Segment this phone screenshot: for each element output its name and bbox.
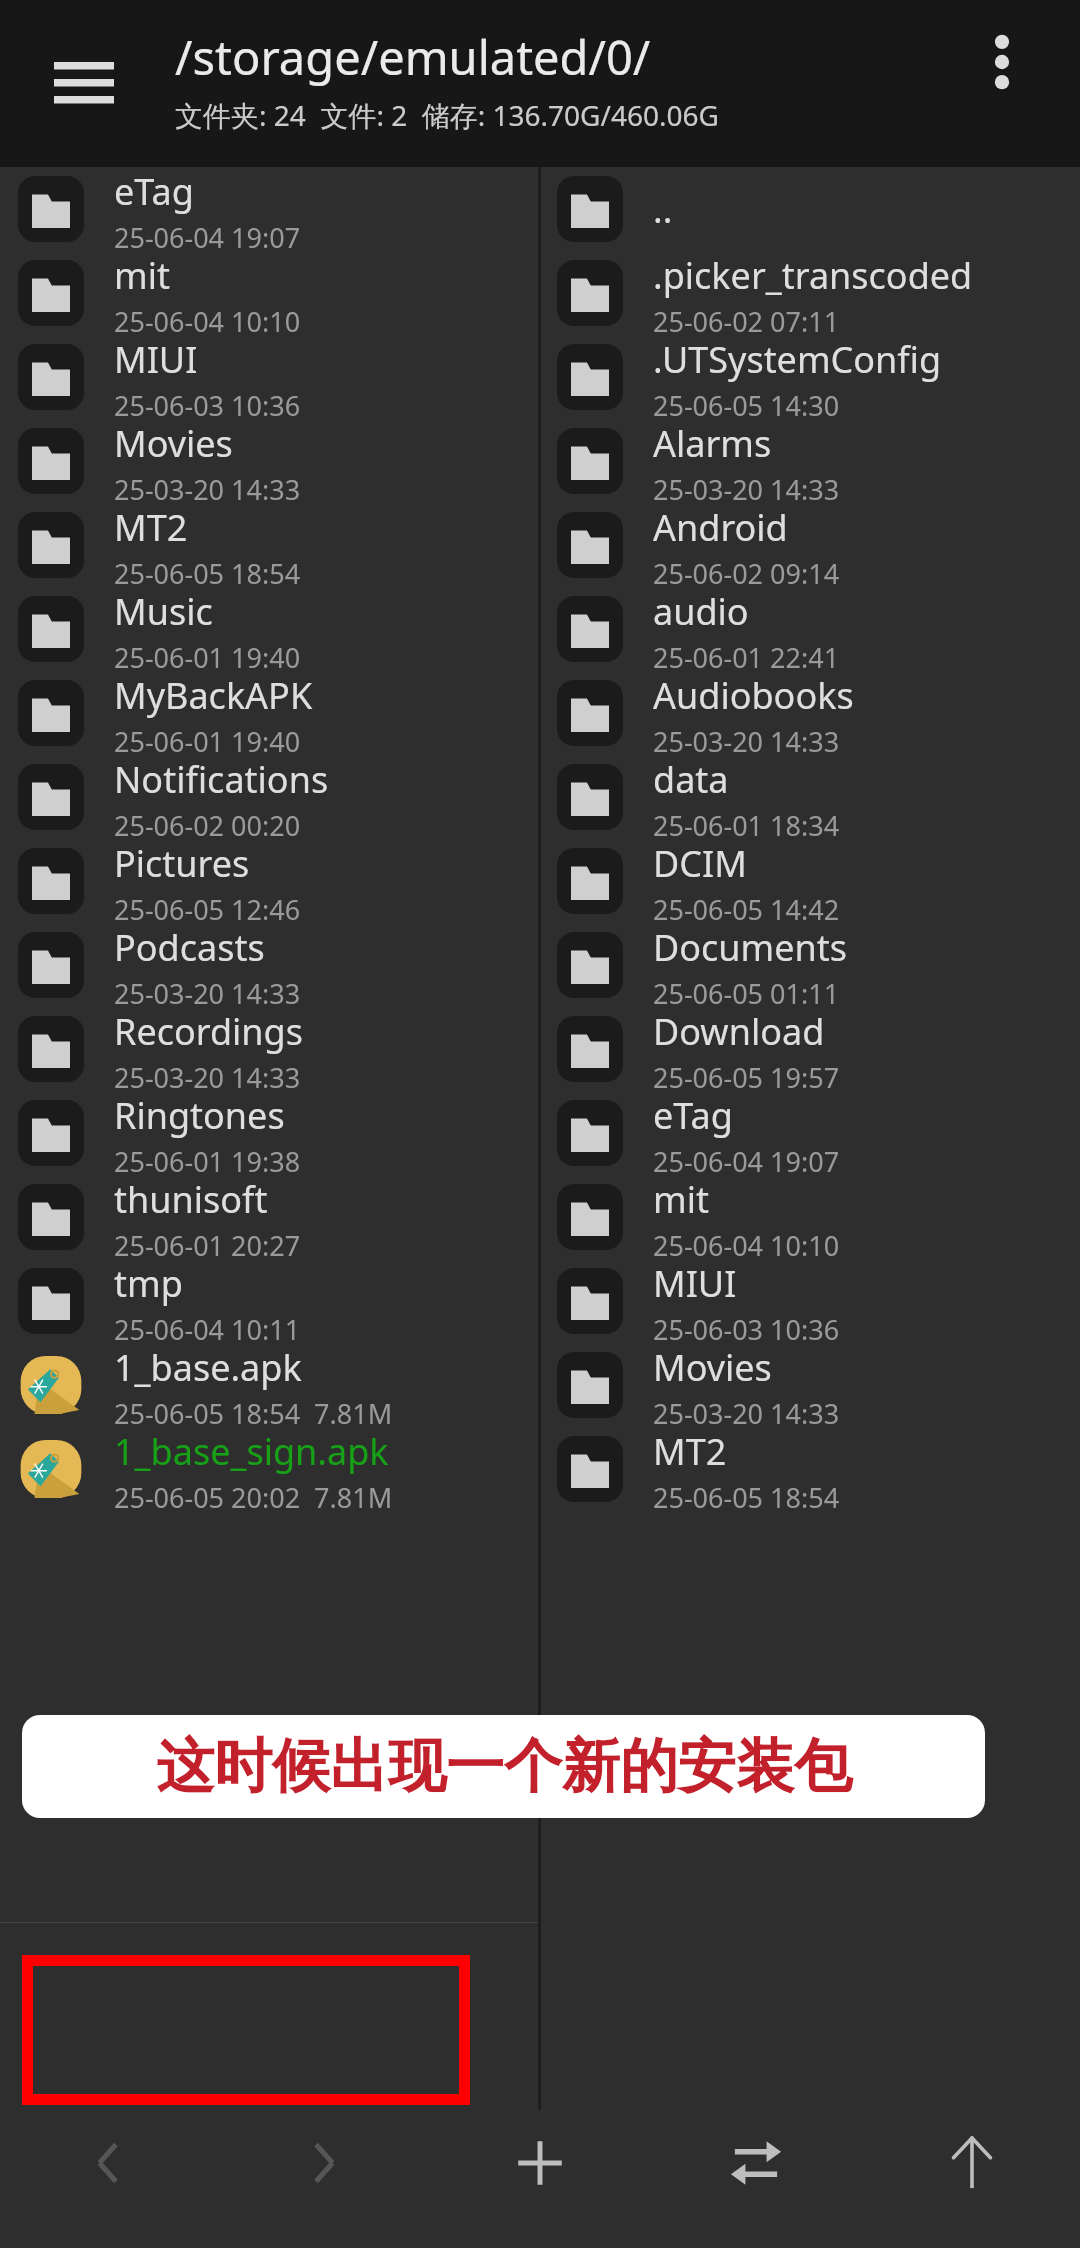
staticText: Music bbox=[114, 587, 213, 636]
button[interactable]: Notifications bbox=[0, 755, 538, 839]
staticText: Audiobooks bbox=[653, 671, 854, 720]
button[interactable]: MT2 bbox=[541, 1427, 1080, 1511]
staticText: Recordings bbox=[114, 1007, 303, 1056]
staticText: eTag bbox=[653, 1091, 733, 1140]
staticText: 25-03-20 14:33 bbox=[653, 723, 840, 755]
staticText: /storage/emulated/0/ bbox=[175, 25, 651, 89]
staticText: MT2 bbox=[114, 503, 188, 552]
button[interactable]: Up bbox=[864, 2110, 1080, 2248]
button[interactable]: .. bbox=[541, 167, 1080, 251]
staticText: 25-06-02 07:11 bbox=[653, 303, 840, 335]
button[interactable]: Documents bbox=[541, 923, 1080, 1007]
button[interactable]: Audiobooks bbox=[541, 671, 1080, 755]
staticText: 25-06-04 19:07 bbox=[114, 219, 301, 251]
staticText: 文件夹: 24 文件: 2 储存: 136.70G/460.06G bbox=[175, 96, 719, 134]
button[interactable]: Forward bbox=[216, 2110, 432, 2248]
staticText: 25-06-05 18:54 bbox=[653, 1479, 840, 1511]
staticText: 25-06-05 19:57 bbox=[653, 1059, 840, 1091]
button[interactable]: DCIM bbox=[541, 839, 1080, 923]
button[interactable]: Ringtones bbox=[0, 1091, 538, 1175]
button[interactable]: eTag bbox=[541, 1091, 1080, 1175]
button[interactable]: 1_base_sign.apk bbox=[0, 1427, 538, 1511]
staticText: 1_base_sign.apk bbox=[114, 1427, 389, 1476]
staticText: 25-06-03 10:36 bbox=[114, 387, 301, 419]
button[interactable]: Menu bbox=[24, 32, 124, 132]
staticText: 25-06-01 19:38 bbox=[114, 1143, 301, 1175]
staticText: thunisoft bbox=[114, 1175, 268, 1224]
button[interactable]: .UTSystemConfig bbox=[541, 335, 1080, 419]
button[interactable]: 1_base.apk bbox=[0, 1343, 538, 1427]
staticText: Ringtones bbox=[114, 1091, 285, 1140]
staticText: Alarms bbox=[653, 419, 772, 468]
staticText: 25-06-04 10:10 bbox=[114, 303, 301, 335]
staticText: MIUI bbox=[114, 335, 198, 384]
staticText: audio bbox=[653, 587, 749, 636]
button[interactable]: MyBackAPK bbox=[0, 671, 538, 755]
staticText: 25-06-05 01:11 bbox=[653, 975, 840, 1007]
button[interactable]: Recordings bbox=[0, 1007, 538, 1091]
button[interactable]: .picker_transcoded bbox=[541, 251, 1080, 335]
button[interactable]: MT2 bbox=[0, 503, 538, 587]
button[interactable]: tmp bbox=[0, 1259, 538, 1343]
staticText: 25-03-20 14:33 bbox=[653, 471, 840, 503]
staticText: Podcasts bbox=[114, 923, 265, 972]
staticText: MT2 bbox=[653, 1427, 727, 1476]
button[interactable]: Podcasts bbox=[0, 923, 538, 1007]
staticText: .picker_transcoded bbox=[653, 251, 973, 300]
staticText: 25-06-05 18:54 7.81M bbox=[114, 1395, 393, 1427]
staticText: eTag bbox=[114, 167, 194, 216]
button[interactable]: More options bbox=[960, 20, 1044, 104]
staticText: mit bbox=[114, 251, 170, 300]
staticText: 25-06-04 10:11 bbox=[114, 1311, 301, 1343]
staticText: 25-06-02 00:20 bbox=[114, 807, 301, 839]
button[interactable]: data bbox=[541, 755, 1080, 839]
button[interactable]: MIUI bbox=[541, 1259, 1080, 1343]
button[interactable]: Transfer bbox=[648, 2110, 864, 2248]
staticText: mit bbox=[653, 1175, 709, 1224]
button[interactable]: Alarms bbox=[541, 419, 1080, 503]
staticText: 25-06-01 18:34 bbox=[653, 807, 840, 839]
staticText: 25-06-05 14:30 bbox=[653, 387, 840, 419]
staticText: .UTSystemConfig bbox=[653, 335, 942, 384]
staticText: MyBackAPK bbox=[114, 671, 313, 720]
button[interactable]: audio bbox=[541, 587, 1080, 671]
button[interactable]: Music bbox=[0, 587, 538, 671]
button[interactable]: Movies bbox=[0, 419, 538, 503]
button[interactable]: Movies bbox=[541, 1343, 1080, 1427]
staticText: 25-06-01 19:40 bbox=[114, 639, 301, 671]
staticText: 25-06-03 10:36 bbox=[653, 1311, 840, 1343]
staticText: Movies bbox=[653, 1343, 772, 1392]
staticText: 25-06-05 14:42 bbox=[653, 891, 840, 923]
staticText: Movies bbox=[114, 419, 233, 468]
button[interactable]: Back bbox=[0, 2110, 216, 2248]
staticText: DCIM bbox=[653, 839, 747, 888]
staticText: 25-06-01 20:27 bbox=[114, 1227, 301, 1259]
staticText: Notifications bbox=[114, 755, 329, 804]
staticText: .. bbox=[653, 185, 673, 234]
staticText: 25-03-20 14:33 bbox=[653, 1395, 840, 1427]
staticText: 25-06-02 09:14 bbox=[653, 555, 840, 587]
staticText: 25-03-20 14:33 bbox=[114, 471, 301, 503]
button[interactable]: Download bbox=[541, 1007, 1080, 1091]
button[interactable]: eTag bbox=[0, 167, 538, 251]
staticText: 25-06-04 10:10 bbox=[653, 1227, 840, 1259]
staticText: 25-03-20 14:33 bbox=[114, 1059, 301, 1091]
staticText: 25-06-01 19:40 bbox=[114, 723, 301, 755]
staticText: 这时候出现一个新的安装包 bbox=[156, 1730, 852, 1803]
staticText: Android bbox=[653, 503, 788, 552]
button[interactable]: Android bbox=[541, 503, 1080, 587]
button[interactable]: thunisoft bbox=[0, 1175, 538, 1259]
staticText: 25-06-05 18:54 bbox=[114, 555, 301, 587]
staticText: Documents bbox=[653, 923, 848, 972]
staticText: 25-06-01 22:41 bbox=[653, 639, 840, 671]
button[interactable]: MIUI bbox=[0, 335, 538, 419]
button[interactable]: mit bbox=[0, 251, 538, 335]
staticText: 25-03-20 14:33 bbox=[114, 975, 301, 1007]
staticText: Pictures bbox=[114, 839, 250, 888]
button[interactable]: New bbox=[432, 2110, 648, 2248]
button[interactable]: Pictures bbox=[0, 839, 538, 923]
button[interactable]: mit bbox=[541, 1175, 1080, 1259]
staticText: 25-06-05 12:46 bbox=[114, 891, 301, 923]
staticText: Download bbox=[653, 1007, 825, 1056]
staticText: MIUI bbox=[653, 1259, 737, 1308]
